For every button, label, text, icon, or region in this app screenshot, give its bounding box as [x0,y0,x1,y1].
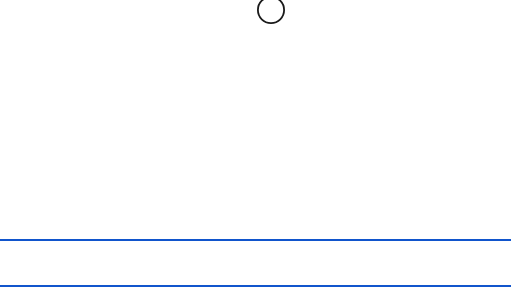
button[interactable]: Select option [257,0,285,24]
